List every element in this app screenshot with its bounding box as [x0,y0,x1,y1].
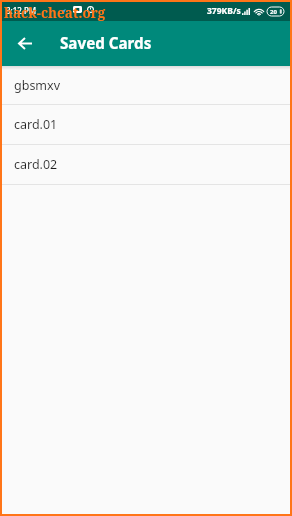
staticText: 379KB/s [207,5,241,17]
staticText: 20 [270,8,277,16]
button[interactable]: gbsmxv [2,66,290,105]
staticText: gbsmxv [14,77,61,94]
staticText: hack-cheat.org [4,4,106,22]
button[interactable]: card.02 [2,145,290,185]
staticText: card.01 [14,116,58,133]
staticText: 3:12 PM [6,5,37,16]
button[interactable]: Back [5,23,45,63]
staticText: Saved Cards [60,33,152,54]
staticText: card.02 [14,156,58,173]
button[interactable]: card.01 [2,105,290,145]
